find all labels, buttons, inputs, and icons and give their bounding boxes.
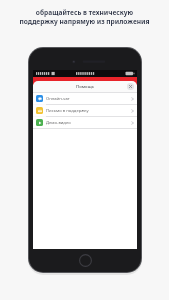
button[interactable]: Демо-видео (33, 117, 137, 128)
staticText: Онлайн-чат (46, 96, 131, 102)
button[interactable]: Закрыть (127, 83, 134, 90)
staticText: Демо-видео (46, 120, 131, 126)
button[interactable]: Онлайн-чат (33, 93, 137, 104)
staticText: обращайтесь в техническую поддержку напр… (10, 8, 159, 26)
staticText: Письмо в поддержку (46, 108, 131, 114)
staticText: Помощь (76, 84, 94, 90)
button[interactable]: Письмо в поддержку (33, 105, 137, 116)
